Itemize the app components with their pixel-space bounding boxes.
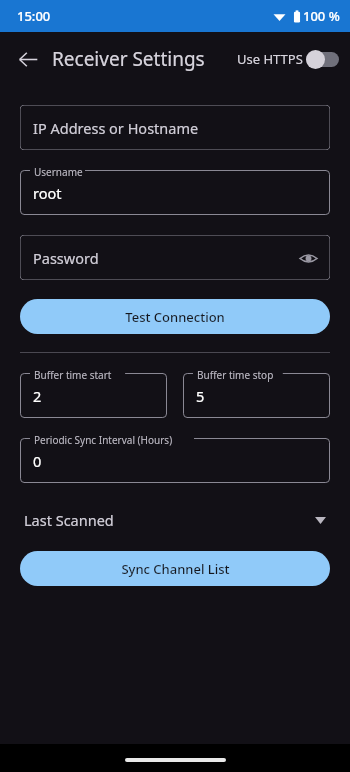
staticText: root — [33, 183, 62, 203]
button[interactable]: Use HTTPS — [237, 48, 342, 70]
button[interactable]: Periodic Sync Interval (Hours) — [20, 438, 330, 483]
staticText: Username — [34, 165, 83, 179]
staticText: Password — [33, 248, 99, 268]
button[interactable]: Test Connection — [20, 299, 330, 334]
staticText: Buffer time stop — [197, 368, 274, 382]
button[interactable]: Last Scanned — [0, 503, 350, 537]
button[interactable]: Buffer time stop — [183, 373, 330, 418]
button[interactable]: Buffer time start — [20, 373, 167, 418]
button[interactable]: Username — [20, 170, 330, 215]
staticText: IP Address or Hostname — [33, 118, 199, 138]
button[interactable]: Show password — [296, 246, 320, 270]
staticText: 5 — [196, 386, 205, 406]
staticText: Use HTTPS — [237, 50, 303, 68]
staticText: 2 — [33, 386, 42, 406]
staticText: 0 — [33, 451, 42, 471]
button[interactable]: Back — [8, 39, 48, 79]
staticText: Sync Channel List — [121, 560, 230, 578]
staticText: Receiver Settings — [52, 46, 205, 72]
button[interactable]: Sync Channel List — [20, 551, 330, 586]
button[interactable]: IP Address or Hostname — [20, 105, 330, 150]
staticText: Periodic Sync Interval (Hours) — [34, 433, 173, 447]
button[interactable]: Password — [20, 235, 330, 280]
staticText: 100 % — [303, 7, 340, 25]
staticText: Last Scanned — [24, 510, 114, 530]
staticText: Test Connection — [125, 308, 225, 326]
staticText: 15:00 — [17, 7, 51, 25]
staticText: Buffer time start — [34, 368, 112, 382]
